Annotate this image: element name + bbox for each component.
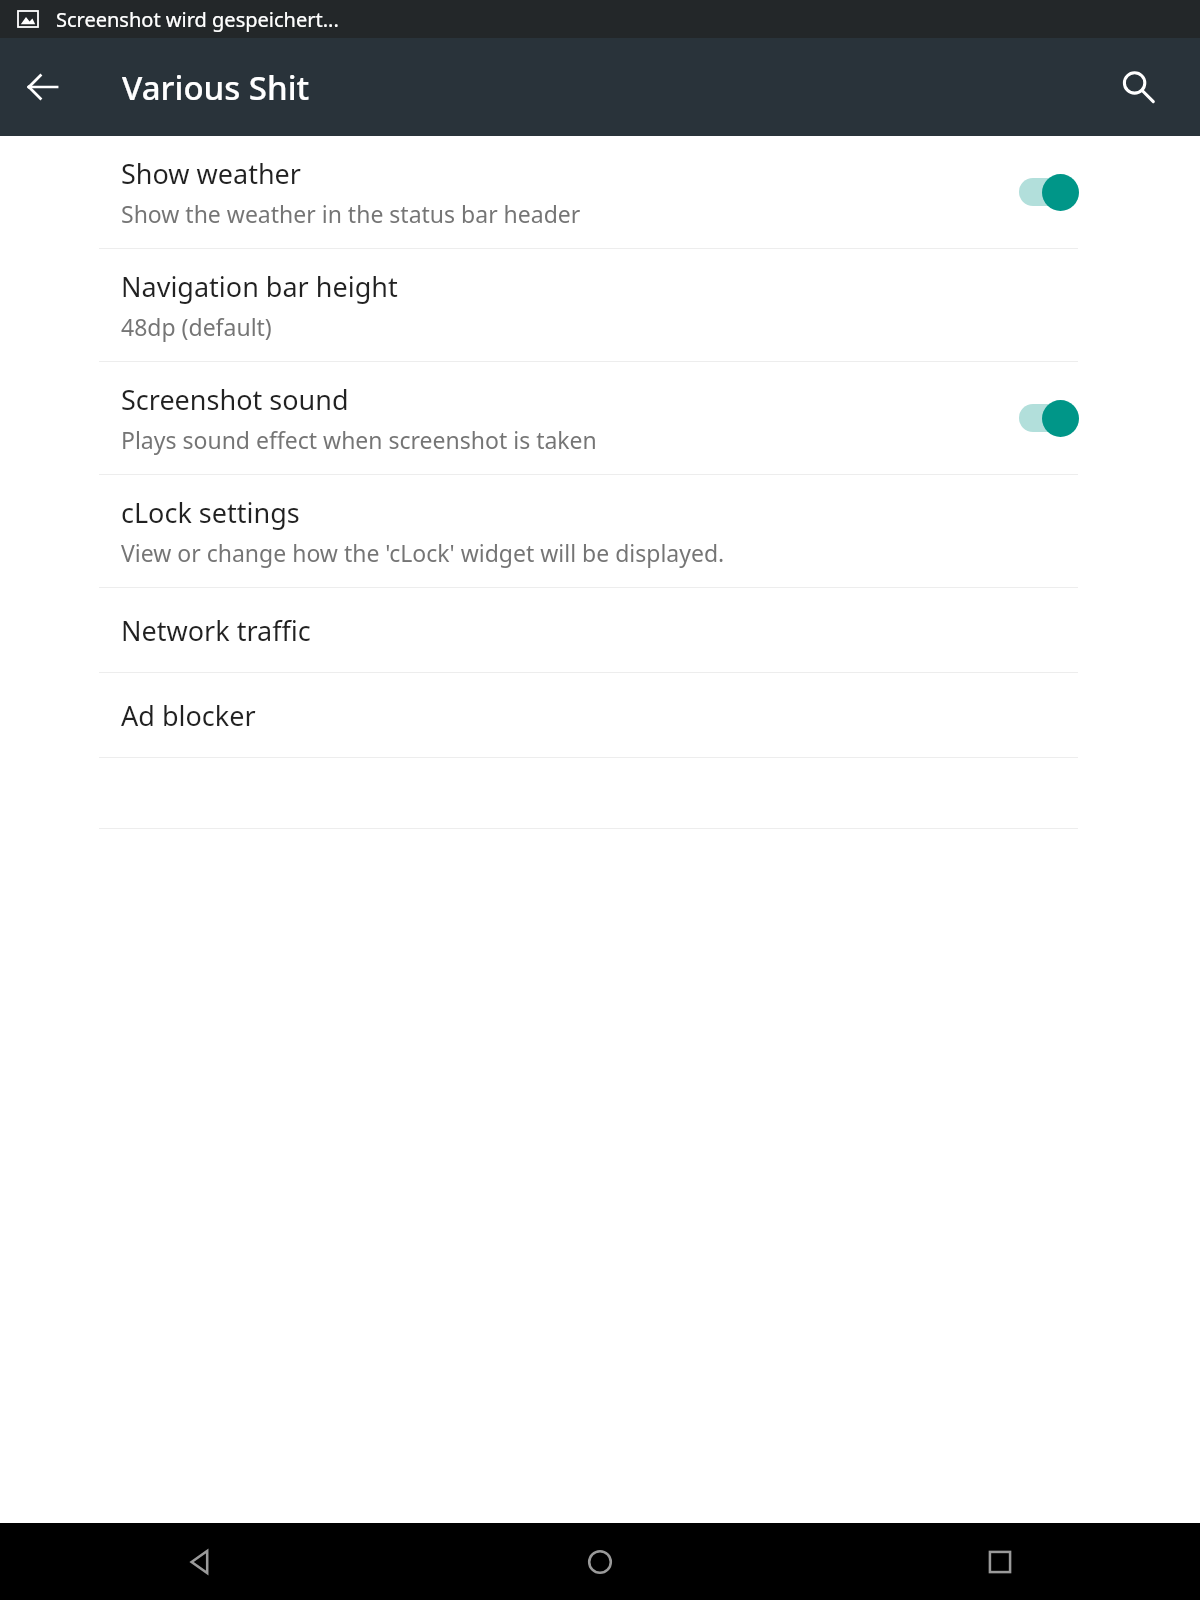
staticText: Screenshot wird gespeichert...: [56, 6, 339, 33]
staticText: Navigation bar height: [121, 268, 398, 305]
staticText: Various Shit: [122, 65, 310, 110]
button[interactable]: Show weather: [0, 136, 1200, 248]
staticText: View or change how the 'cLock' widget wi…: [121, 537, 725, 568]
staticText: Screenshot sound: [121, 381, 349, 418]
staticText: Plays sound effect when screenshot is ta…: [121, 424, 597, 455]
button[interactable]: Screenshot sound: [0, 362, 1200, 474]
button[interactable]: Network traffic: [0, 588, 1200, 672]
button[interactable]: Toggle: [1013, 166, 1079, 218]
staticText: Network traffic: [121, 612, 311, 649]
button[interactable]: Toggle: [1013, 392, 1079, 444]
staticText: Show weather: [121, 155, 301, 192]
button[interactable]: Search: [1104, 53, 1172, 121]
staticText: Show the weather in the status bar heade…: [121, 198, 581, 229]
button[interactable]: Back: [9, 53, 77, 121]
button[interactable]: cLock settings: [0, 475, 1200, 587]
button[interactable]: Home: [400, 1523, 800, 1600]
button[interactable]: Back: [0, 1523, 400, 1600]
button[interactable]: Recent apps: [800, 1523, 1200, 1600]
button[interactable]: Navigation bar height: [0, 249, 1200, 361]
button[interactable]: Ad blocker: [0, 673, 1200, 757]
staticText: cLock settings: [121, 494, 300, 531]
staticText: 48dp (default): [121, 311, 272, 342]
staticText: Ad blocker: [121, 697, 256, 734]
